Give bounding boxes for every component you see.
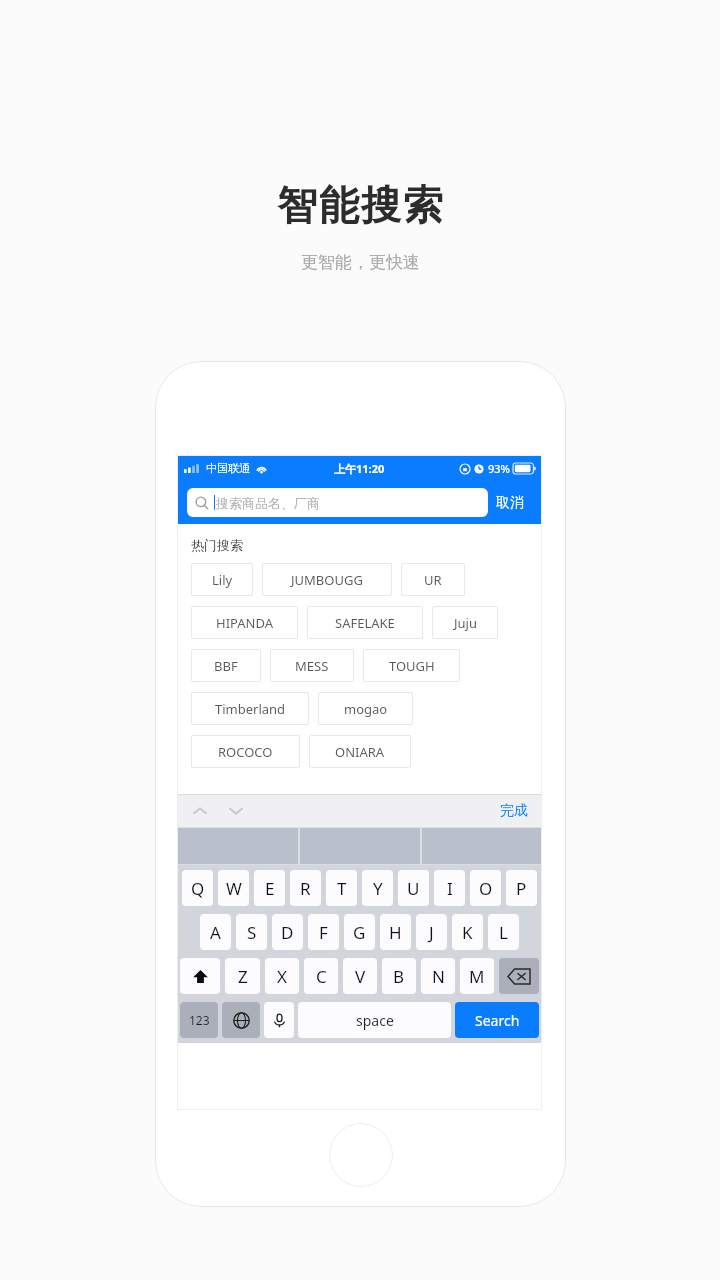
button[interactable]: Backspace	[499, 958, 539, 994]
button[interactable]: 完成	[496, 802, 532, 820]
staticText: B	[393, 965, 405, 988]
button[interactable]: TOUGH	[363, 649, 460, 682]
button[interactable]: Juju	[432, 606, 498, 639]
staticText: SAFELAKE	[335, 614, 395, 632]
button[interactable]: 取消	[488, 490, 532, 516]
button[interactable]: space	[298, 1002, 451, 1038]
button[interactable]: D	[272, 914, 303, 950]
button[interactable]	[422, 828, 542, 864]
button[interactable]: T	[326, 870, 357, 906]
button[interactable]: Q	[182, 870, 213, 906]
button[interactable]: A	[200, 914, 231, 950]
staticText: H	[389, 921, 402, 944]
button[interactable]: O	[470, 870, 501, 906]
staticText: C	[316, 965, 327, 988]
staticText: 更智能，更快速	[301, 252, 420, 273]
staticText: Q	[191, 877, 205, 900]
staticText: 完成	[500, 802, 528, 820]
staticText: mogao	[344, 700, 388, 718]
button[interactable]: ONIARA	[309, 735, 411, 768]
staticText: Juju	[454, 614, 477, 632]
staticText: F	[319, 921, 328, 944]
button[interactable]: SAFELAKE	[307, 606, 423, 639]
button[interactable]: 123	[180, 1002, 218, 1038]
button[interactable]: HIPANDA	[191, 606, 298, 639]
button[interactable]: Change keyboard	[222, 1002, 260, 1038]
button[interactable]: K	[452, 914, 483, 950]
button[interactable]: Lily	[191, 563, 253, 596]
button[interactable]: I	[434, 870, 465, 906]
staticText: G	[353, 921, 366, 944]
button[interactable]: X	[265, 958, 299, 994]
staticText: D	[281, 921, 294, 944]
button[interactable]: N	[421, 958, 455, 994]
button[interactable]: Y	[362, 870, 393, 906]
button[interactable]: L	[488, 914, 519, 950]
button[interactable]: E	[254, 870, 285, 906]
staticText: N	[432, 965, 445, 988]
button[interactable]: W	[218, 870, 249, 906]
staticText: T	[337, 877, 347, 900]
button[interactable]: Search	[455, 1002, 539, 1038]
staticText: 搜索商品名、厂商	[216, 495, 320, 511]
staticText: X	[277, 965, 287, 988]
button[interactable]: Z	[225, 958, 260, 994]
staticText: 123	[189, 1012, 210, 1028]
button[interactable]: B	[382, 958, 416, 994]
staticText: BBF	[214, 657, 238, 675]
button[interactable]: BBF	[191, 649, 261, 682]
button[interactable]: ROCOCO	[191, 735, 300, 768]
staticText: A	[210, 921, 221, 944]
staticText: K	[462, 921, 473, 944]
staticText: S	[247, 921, 257, 944]
staticText: L	[499, 921, 508, 944]
staticText: E	[265, 877, 275, 900]
button[interactable]: G	[344, 914, 375, 950]
button[interactable]: V	[343, 958, 377, 994]
staticText: W	[226, 877, 242, 900]
staticText: ROCOCO	[218, 743, 273, 761]
button[interactable]	[177, 828, 298, 864]
staticText: Y	[373, 877, 383, 900]
staticText: 取消	[496, 494, 524, 512]
staticText: Lily	[212, 571, 233, 589]
staticText: V	[355, 965, 366, 988]
staticText: 热门搜索	[191, 537, 243, 553]
button[interactable]: P	[506, 870, 537, 906]
button[interactable]: Dictate	[264, 1002, 294, 1038]
button[interactable]: Shift	[180, 958, 220, 994]
button[interactable]: H	[380, 914, 411, 950]
staticText: space	[356, 1011, 394, 1030]
staticText: Search	[475, 1011, 520, 1030]
staticText: JUMBOUGG	[291, 571, 363, 589]
button[interactable]: C	[304, 958, 338, 994]
staticText: I	[447, 877, 453, 900]
staticText: O	[479, 877, 493, 900]
button[interactable]: Next	[223, 798, 249, 824]
staticText: P	[516, 877, 527, 900]
staticText: Timberland	[215, 700, 286, 718]
button[interactable]: F	[308, 914, 339, 950]
staticText: TOUGH	[389, 657, 435, 675]
staticText: MESS	[295, 657, 329, 675]
staticText: UR	[424, 571, 442, 589]
staticText: U	[407, 877, 420, 900]
button[interactable]: JUMBOUGG	[262, 563, 392, 596]
button[interactable]: mogao	[318, 692, 413, 725]
button[interactable]: 搜索商品名、厂商	[187, 488, 488, 517]
button[interactable]: Previous	[187, 798, 213, 824]
button[interactable]: J	[416, 914, 447, 950]
button[interactable]: MESS	[270, 649, 354, 682]
button[interactable]: Home	[329, 1123, 393, 1187]
button[interactable]: R	[290, 870, 321, 906]
staticText: Z	[238, 965, 248, 988]
staticText: M	[469, 965, 485, 988]
button[interactable]: M	[460, 958, 494, 994]
button[interactable]: Timberland	[191, 692, 309, 725]
staticText: R	[300, 877, 311, 900]
staticText: 93%	[488, 461, 510, 476]
button[interactable]: UR	[401, 563, 465, 596]
button[interactable]: S	[236, 914, 267, 950]
button[interactable]: U	[398, 870, 429, 906]
